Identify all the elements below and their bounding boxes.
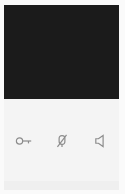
button[interactable]: Speaker: [81, 128, 119, 154]
button[interactable]: Mute microphone: [43, 128, 81, 154]
button[interactable]: Unlock door: [4, 128, 43, 154]
